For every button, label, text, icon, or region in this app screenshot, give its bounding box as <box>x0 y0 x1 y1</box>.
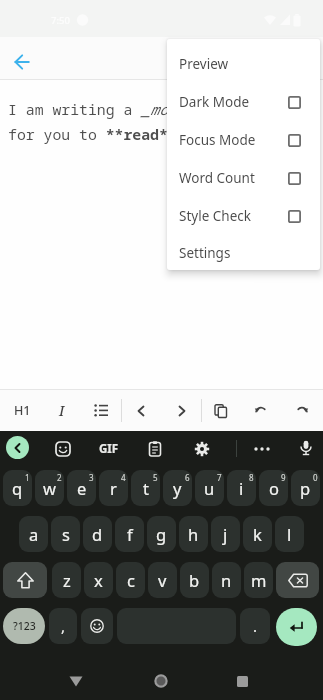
button[interactable]: Dark Mode <box>167 83 320 121</box>
button[interactable] <box>193 440 211 458</box>
staticText: 9 <box>281 472 286 483</box>
button[interactable]: q <box>3 470 32 506</box>
button[interactable] <box>54 440 72 458</box>
staticText: m <box>251 569 267 591</box>
staticText: x <box>94 569 103 591</box>
button[interactable]: e <box>67 470 96 506</box>
button[interactable] <box>62 667 90 695</box>
staticText: I <box>59 401 65 420</box>
button[interactable]: w <box>35 470 64 506</box>
button[interactable] <box>81 608 113 644</box>
staticText: 7:50 <box>51 14 70 27</box>
button[interactable]: g <box>147 516 176 552</box>
staticText: e <box>77 477 87 499</box>
staticText: s <box>62 523 70 545</box>
staticText: Dark Mode <box>179 93 250 111</box>
button[interactable]: s <box>51 516 80 552</box>
staticText: Style Check <box>179 207 251 225</box>
staticText: 8 <box>249 472 254 483</box>
button[interactable] <box>241 390 281 431</box>
button[interactable] <box>6 46 38 78</box>
button[interactable]: f <box>115 516 144 552</box>
button[interactable]: Style Check <box>167 197 320 235</box>
button[interactable]: b <box>180 562 209 598</box>
staticText: f <box>127 523 133 545</box>
button[interactable]: GIF <box>95 440 122 458</box>
button[interactable]: k <box>243 516 272 552</box>
button[interactable]: x <box>84 562 113 598</box>
button[interactable] <box>121 390 161 431</box>
staticText: h <box>188 523 199 545</box>
staticText: p <box>300 477 311 499</box>
button[interactable]: v <box>148 562 177 598</box>
staticText: c <box>127 569 135 591</box>
button[interactable] <box>276 562 319 598</box>
button[interactable]: d <box>83 516 112 552</box>
button[interactable]: Word Count <box>167 159 320 197</box>
button[interactable]: t <box>131 470 160 506</box>
staticText: 6 <box>185 472 190 483</box>
staticText: . <box>253 616 258 636</box>
staticText: Word Count <box>179 169 255 187</box>
button[interactable]: j <box>211 516 240 552</box>
button[interactable]: Settings <box>167 235 320 270</box>
button[interactable]: y <box>163 470 192 506</box>
button[interactable] <box>146 440 164 458</box>
staticText: GIF <box>99 441 119 457</box>
button[interactable] <box>3 562 47 598</box>
button[interactable]: o <box>259 470 288 506</box>
button[interactable]: p <box>291 470 320 506</box>
staticText: v <box>158 569 167 591</box>
staticText: Focus Mode <box>179 131 256 149</box>
staticText: l <box>287 523 292 545</box>
button[interactable] <box>282 390 322 431</box>
button[interactable]: r <box>99 470 128 506</box>
staticText: 5 <box>153 472 158 483</box>
staticText: q <box>12 477 23 499</box>
button[interactable]: a <box>19 516 48 552</box>
button[interactable]: i <box>227 470 256 506</box>
staticText: ?123 <box>13 619 36 633</box>
button[interactable]: . <box>240 608 270 644</box>
button[interactable] <box>228 667 256 695</box>
button[interactable]: I <box>42 390 82 431</box>
button[interactable]: l <box>275 516 304 552</box>
button[interactable] <box>297 439 315 457</box>
button[interactable]: , <box>49 608 77 644</box>
button[interactable]: c <box>116 562 145 598</box>
staticText: I am writing a _modern_ file for you to … <box>8 99 257 145</box>
staticText: H1 <box>14 402 31 419</box>
staticText: k <box>253 523 262 545</box>
button[interactable]: u <box>195 470 224 506</box>
staticText: 4 <box>121 472 126 483</box>
staticText: g <box>156 523 167 545</box>
button[interactable]: z <box>52 562 81 598</box>
staticText: 2 <box>57 472 62 483</box>
button[interactable] <box>6 436 29 459</box>
staticText: Settings <box>179 244 231 262</box>
staticText: 3 <box>89 472 94 483</box>
staticText: u <box>204 477 215 499</box>
staticText: t <box>143 477 149 499</box>
button[interactable] <box>162 390 202 431</box>
button[interactable]: Preview <box>167 45 320 83</box>
button[interactable] <box>201 390 241 431</box>
button[interactable]: m <box>244 562 273 598</box>
button[interactable] <box>276 608 317 646</box>
button[interactable] <box>81 390 121 431</box>
button[interactable]: n <box>212 562 241 598</box>
button[interactable] <box>252 440 272 458</box>
staticText: Preview <box>179 55 229 73</box>
button[interactable]: H1 <box>2 390 42 431</box>
staticText: w <box>43 477 56 499</box>
staticText: 1 <box>25 472 30 483</box>
staticText: b <box>189 569 200 591</box>
button[interactable]: h <box>179 516 208 552</box>
staticText: z <box>63 569 71 591</box>
button[interactable] <box>147 667 175 695</box>
button[interactable]: Focus Mode <box>167 121 320 159</box>
staticText: o <box>269 477 279 499</box>
button[interactable]: ?123 <box>3 608 45 644</box>
staticText: , <box>61 616 66 636</box>
